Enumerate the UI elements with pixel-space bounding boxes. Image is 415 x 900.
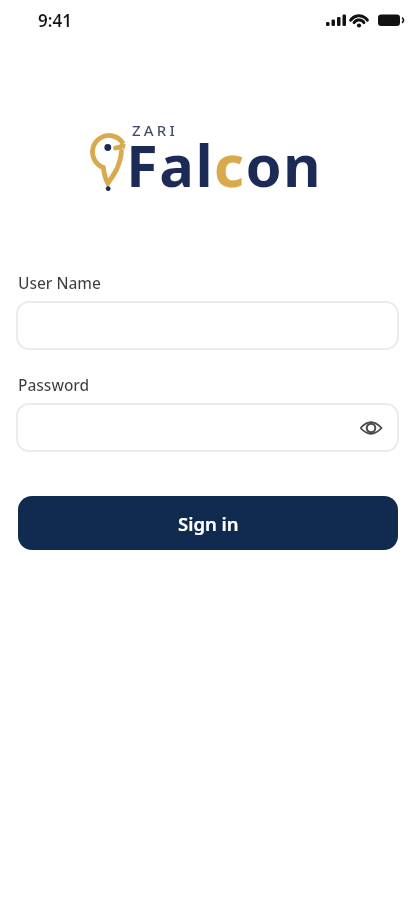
button[interactable] bbox=[16, 403, 399, 452]
button[interactable]: Sign in bbox=[18, 496, 398, 550]
staticText: ZARI bbox=[132, 120, 179, 140]
staticText: User Name bbox=[18, 272, 101, 293]
staticText: Sign in bbox=[178, 511, 239, 536]
staticText: Password bbox=[18, 374, 90, 395]
button[interactable] bbox=[359, 419, 383, 437]
staticText: Falcon bbox=[126, 125, 323, 204]
staticText: 9:41 bbox=[38, 9, 72, 32]
button[interactable] bbox=[16, 301, 399, 350]
